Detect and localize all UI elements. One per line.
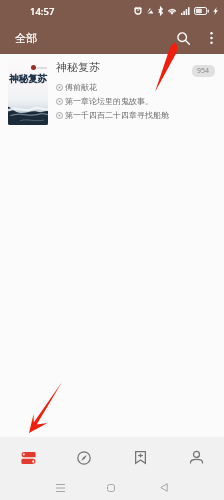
- button[interactable]: 神秘复苏: [0, 54, 224, 131]
- staticText: 神秘复苏: [9, 73, 47, 85]
- button[interactable]: Back: [148, 478, 180, 497]
- staticText: 14:57: [30, 5, 55, 18]
- staticText: 神秘复苏: [56, 60, 192, 74]
- staticText: 傅前献花: [65, 82, 97, 92]
- button[interactable]: Recents: [44, 478, 76, 497]
- button[interactable]: Search: [168, 22, 198, 54]
- button[interactable]: Bookshelf: [0, 437, 56, 478]
- staticText: 954: [197, 66, 210, 76]
- staticText: 第一章论坛里的鬼故事。: [65, 96, 153, 106]
- staticText: 第一千四百二十四章寻找船舱: [65, 110, 169, 120]
- button[interactable]: Profile: [168, 437, 224, 478]
- button[interactable]: More options: [198, 22, 224, 54]
- button[interactable]: Bookmarks: [112, 437, 168, 478]
- button[interactable]: Discover: [56, 437, 112, 478]
- staticText: 全部: [15, 31, 37, 45]
- button[interactable]: Home: [95, 478, 127, 497]
